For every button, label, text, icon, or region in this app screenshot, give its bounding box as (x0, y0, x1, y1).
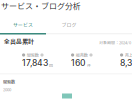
staticText: 回 (49, 62, 53, 68)
staticText: 売上 (125, 52, 132, 58)
button[interactable]: ブログ (46, 16, 92, 33)
button[interactable]: サービス (0, 16, 46, 33)
staticText: 件 (87, 62, 91, 68)
staticText: 2000 (3, 88, 11, 92)
staticText: 17,843 (22, 58, 48, 68)
staticText: サービス・ブログ分析 (1, 0, 81, 12)
staticText: 対象期間：2024/0 (99, 40, 131, 45)
staticText: 販売数 (76, 52, 88, 58)
staticText: サービス (13, 21, 33, 28)
staticText: 160 (71, 58, 86, 68)
staticText: 8,32 (120, 58, 132, 68)
staticText: 閲覧数 (27, 52, 39, 58)
staticText: 全出品累計 (4, 37, 34, 45)
staticText: ブログ (61, 21, 76, 28)
staticText: 閲覧数 (3, 78, 15, 85)
